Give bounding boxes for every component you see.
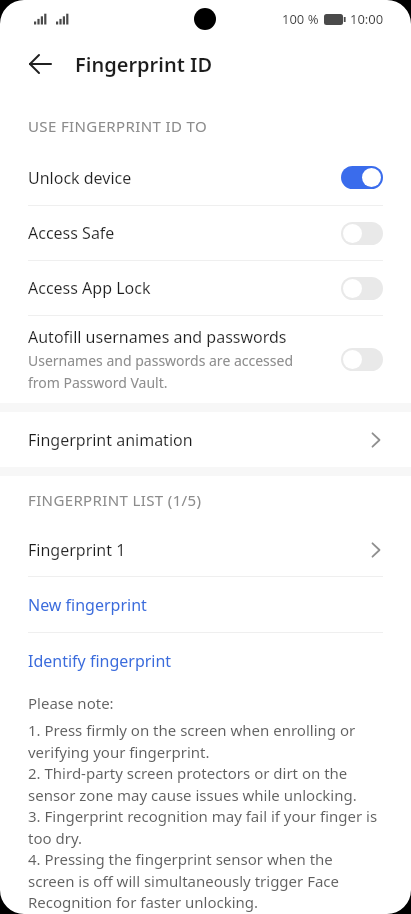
button[interactable]: Identify fingerprint	[0, 633, 411, 688]
button[interactable]: Autofill usernames and passwords	[28, 316, 383, 403]
button[interactable]	[28, 52, 52, 76]
button[interactable]: Access Safe	[28, 206, 383, 260]
button[interactable]: Fingerprint animation	[28, 412, 381, 467]
button[interactable]: New fingerprint	[0, 577, 411, 632]
staticText: 3. Fingerprint recognition may fail if y…	[28, 806, 378, 848]
staticText: USE FINGERPRINT ID TO	[28, 116, 207, 136]
button[interactable]: Fingerprint 1	[28, 524, 381, 576]
staticText: FINGERPRINT LIST (1/5)	[28, 490, 202, 510]
staticText: 2. Third-party screen protectors or dirt…	[28, 763, 357, 805]
staticText: Fingerprint animation	[28, 429, 193, 451]
staticText: 100 %	[282, 10, 319, 28]
button[interactable]: Access App Lock	[28, 261, 383, 315]
staticText: Autofill usernames and passwords	[28, 326, 287, 348]
button[interactable]	[341, 222, 383, 245]
button[interactable]	[341, 348, 383, 371]
staticText: 1. Press firmly on the screen when enrol…	[28, 720, 356, 762]
button[interactable]	[341, 166, 383, 189]
staticText: Access App Lock	[28, 277, 151, 299]
staticText: Access Safe	[28, 222, 115, 244]
staticText: 10:00	[350, 10, 384, 28]
staticText: 4. Pressing the fingerprint sensor when …	[28, 849, 339, 912]
staticText: Fingerprint ID	[75, 51, 213, 78]
staticText: Unlock device	[28, 167, 132, 189]
button[interactable]: Unlock device	[28, 150, 383, 205]
staticText: New fingerprint	[28, 594, 147, 616]
staticText: Please note:	[28, 693, 114, 713]
button[interactable]	[341, 277, 383, 300]
staticText: Identify fingerprint	[28, 650, 172, 672]
staticText: Fingerprint 1	[28, 539, 126, 561]
staticText: Usernames and passwords are accessed fro…	[28, 351, 294, 392]
